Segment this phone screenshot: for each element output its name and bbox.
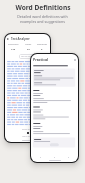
staticText: Tap to analyze [21,55,35,58]
button[interactable]: Tab [36,155,45,160]
staticText: Tap to copy [22,135,33,138]
staticText: 3 [41,47,43,50]
button[interactable]: Tab [64,155,73,160]
staticText: 24 [27,47,30,50]
staticText: Practical [33,57,49,62]
button[interactable]: Tab [50,155,59,160]
button[interactable]: Tap to analyze [21,55,35,58]
staticText: Sentences [37,43,48,46]
button[interactable]: Back [5,37,50,41]
other: Back [7,38,9,40]
staticText: Word Definitions [15,3,71,12]
staticText: 142 [11,47,16,50]
staticText: Detailed word definitions with examples … [17,14,68,24]
staticText: words found [22,128,34,131]
staticText: Text Analyzer [11,37,30,41]
staticText: Words [25,43,32,46]
staticText: Characters [8,43,19,46]
